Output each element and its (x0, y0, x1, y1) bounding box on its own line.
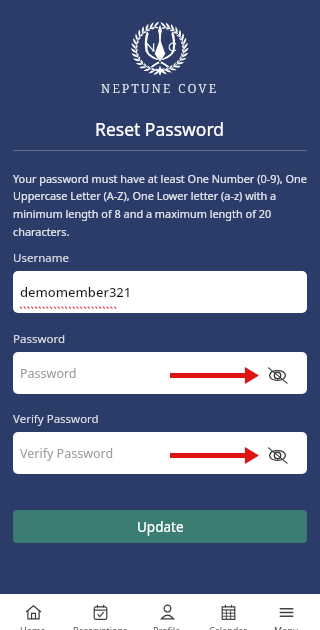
staticText: Password (13, 331, 66, 347)
staticText: Update (137, 518, 184, 536)
staticText: Verify Password (20, 445, 114, 462)
button[interactable]: Verify Password (13, 432, 307, 474)
button[interactable]: Reservations (68, 594, 132, 630)
button[interactable]: Show password (263, 361, 291, 389)
staticText: Calendar (209, 624, 247, 630)
staticText: Password (20, 365, 77, 382)
button[interactable]: Update (13, 510, 307, 543)
staticText: Menu (274, 624, 299, 630)
button[interactable]: Home (1, 594, 65, 630)
staticText: Reservations (73, 624, 128, 630)
button[interactable]: Calendar (196, 594, 260, 630)
staticText: Profile (153, 624, 181, 630)
button[interactable]: Password (13, 352, 307, 394)
staticText: Username (13, 250, 69, 266)
staticText: Verify Password (13, 411, 99, 427)
staticText: demomember321 (20, 283, 132, 301)
button[interactable]: Profile (135, 594, 199, 630)
staticText: NEPTUNE COVE (101, 80, 219, 96)
button[interactable]: demomember321 (13, 271, 307, 313)
staticText: Reset Password (95, 117, 225, 141)
staticText: Your password must have at least One Num… (13, 171, 307, 239)
button[interactable]: Show password (263, 441, 291, 469)
staticText: Home (20, 624, 46, 630)
button[interactable]: Menu (254, 594, 318, 630)
